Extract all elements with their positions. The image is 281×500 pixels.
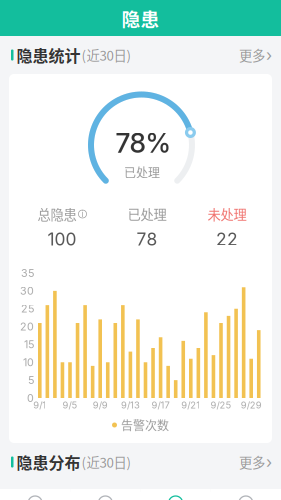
staticText: 30 [20, 284, 34, 297]
staticText: 9/9 [93, 399, 108, 411]
staticText: 隐患统计 [16, 43, 80, 67]
staticText: (近30日) [81, 452, 131, 472]
button[interactable]: 更多 [225, 444, 272, 480]
staticText: 未处理 [207, 204, 246, 224]
staticText: 9/25 [210, 399, 231, 411]
staticText: 告警次数 [121, 416, 169, 434]
staticText: 22 [216, 229, 238, 250]
staticText: 10 [23, 356, 34, 369]
staticText: 20 [20, 320, 34, 333]
button[interactable]: 首页 [0, 492, 70, 500]
staticText: i [81, 209, 83, 219]
staticText: 15 [24, 338, 34, 351]
staticText: 9/13 [121, 399, 140, 411]
button[interactable]: 更多 [225, 37, 272, 73]
staticText: 25 [21, 302, 34, 315]
button[interactable]: 监控 [70, 492, 140, 500]
staticText: (近30日) [81, 45, 131, 65]
button[interactable]: 我的 [211, 492, 281, 500]
staticText: 隐患 [121, 4, 159, 31]
staticText: 35 [21, 266, 34, 279]
staticText: 78% [115, 127, 170, 159]
staticText: 隐患分布 [16, 450, 80, 474]
staticText: › [266, 45, 272, 65]
staticText: 78 [136, 229, 157, 250]
button[interactable]: 隐患 [140, 492, 211, 500]
staticText: 100 [47, 229, 76, 250]
staticText: 9/1 [33, 399, 46, 411]
staticText: › [266, 452, 272, 472]
staticText: 更多 [239, 452, 265, 472]
staticText: 总隐患 [37, 204, 76, 224]
staticText: 更多 [239, 45, 265, 65]
staticText: 5 [28, 374, 34, 386]
staticText: 9/21 [181, 399, 200, 411]
staticText: 9/29 [241, 399, 262, 411]
staticText: 9/17 [152, 399, 170, 411]
staticText: 已处理 [127, 204, 166, 224]
staticText: 已处理 [124, 163, 160, 181]
staticText: 0 [27, 391, 34, 404]
staticText: 9/5 [62, 399, 77, 411]
